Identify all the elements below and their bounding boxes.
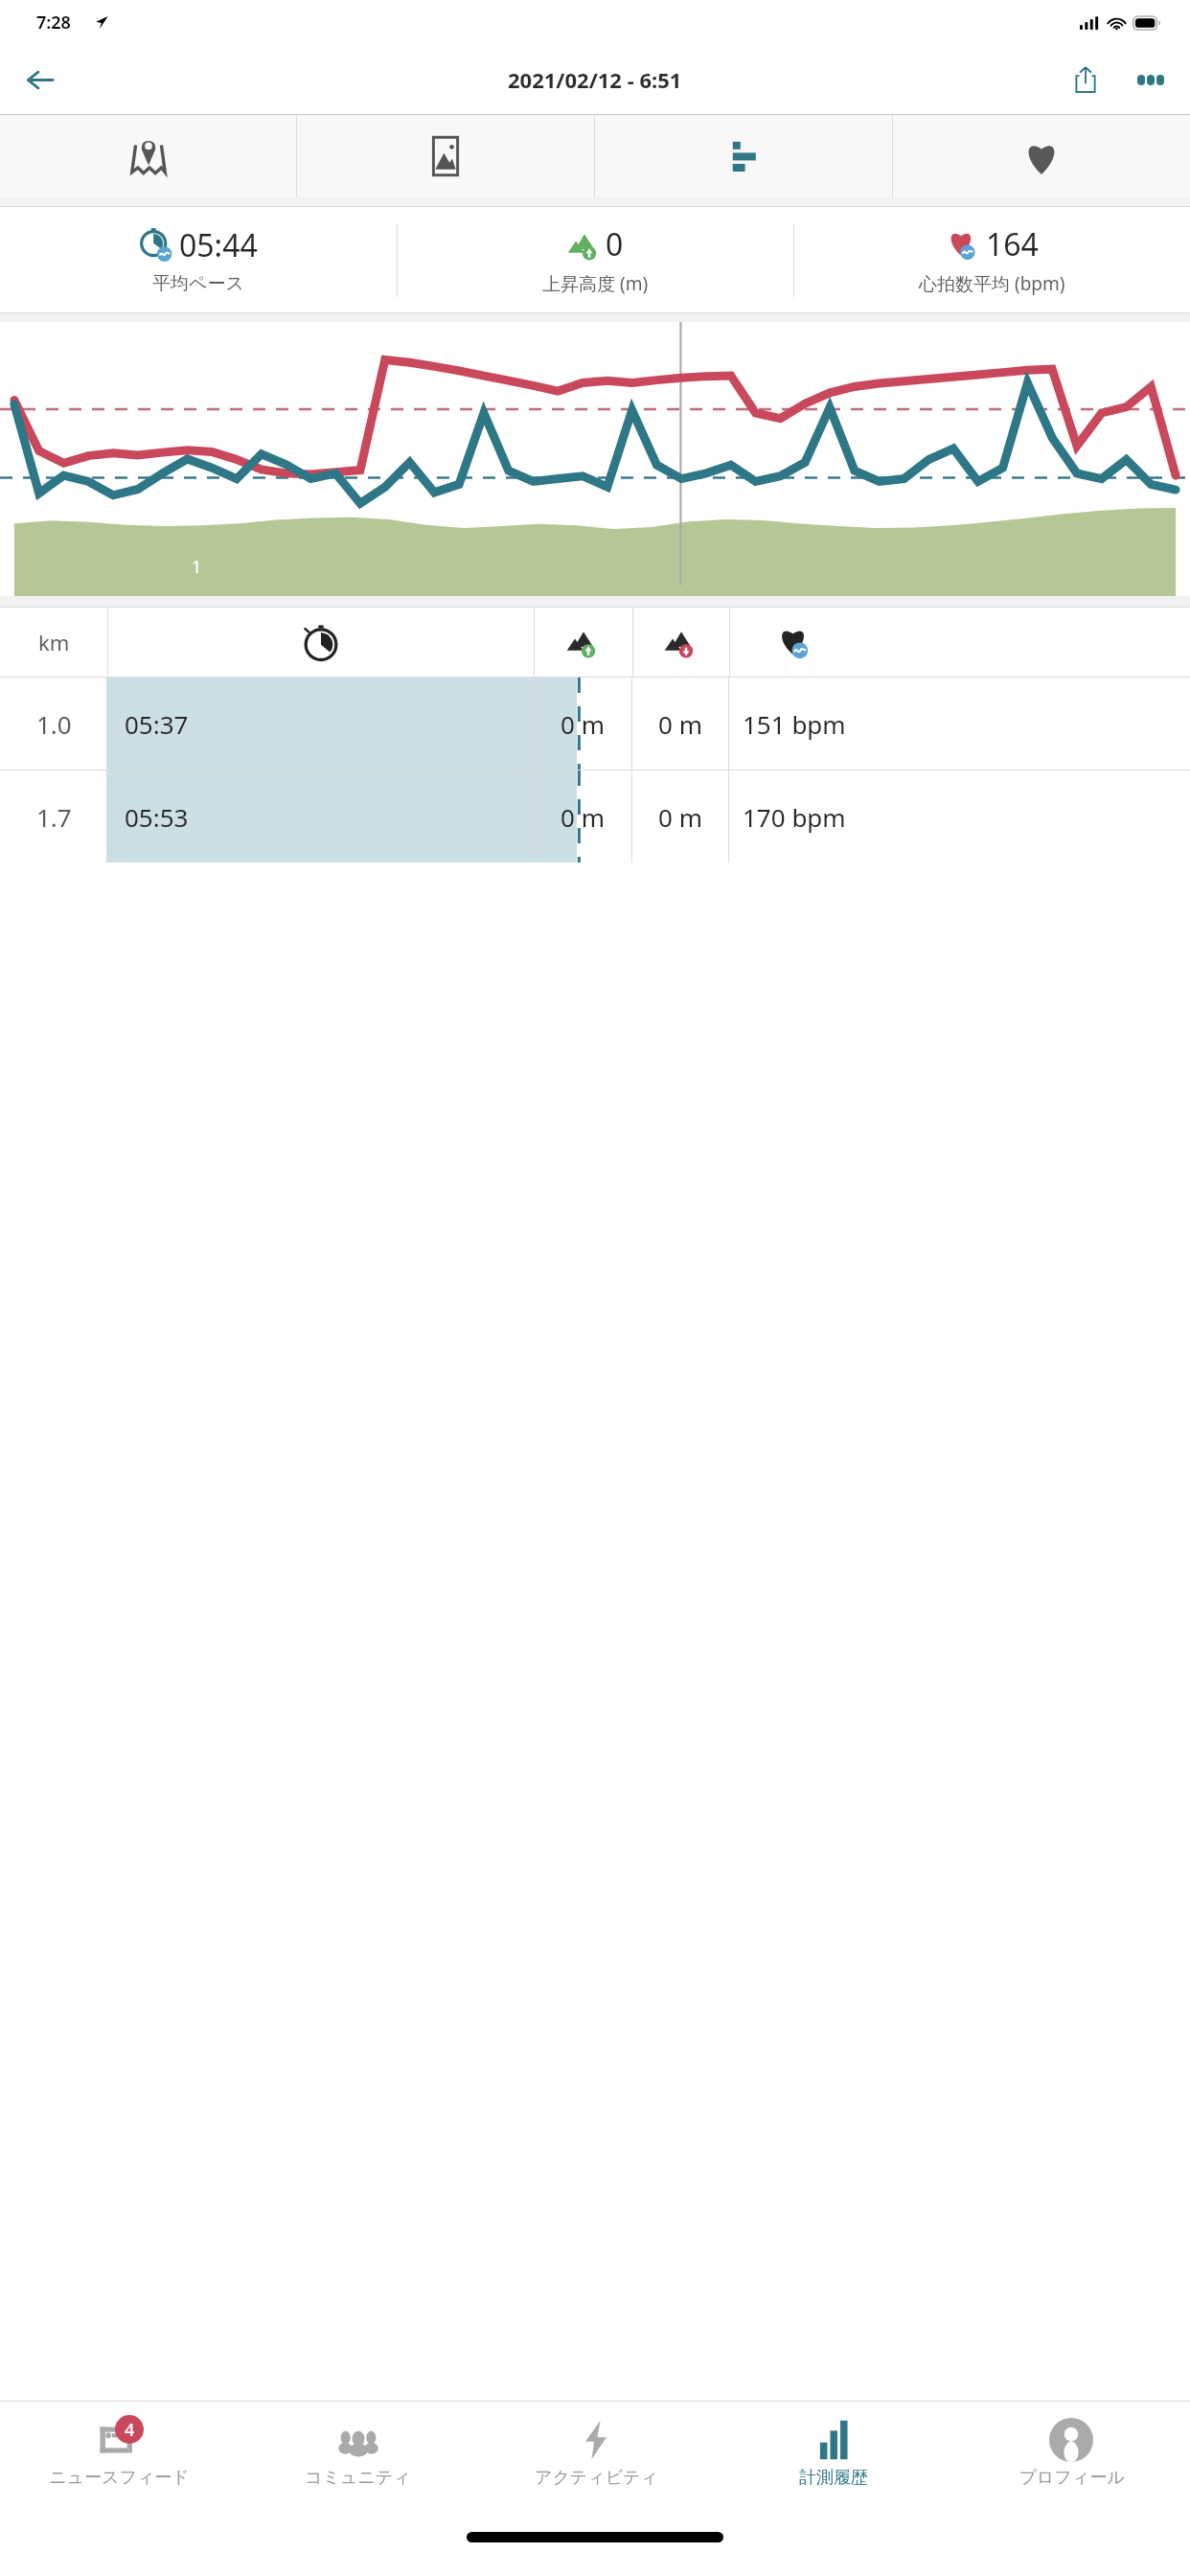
staticText: 0 m: [658, 800, 702, 834]
button[interactable]: More options: [1117, 46, 1184, 113]
button[interactable]: 05:44: [0, 207, 397, 312]
button[interactable]: Heart rate: [893, 115, 1190, 197]
button[interactable]: Chart: [595, 115, 892, 197]
staticText: 心拍数平均 (bpm): [919, 271, 1065, 296]
staticText: 0: [606, 223, 624, 265]
staticText: km: [38, 628, 70, 656]
staticText: 1.7: [36, 800, 72, 834]
staticText: 05:44: [179, 224, 258, 266]
staticText: 05:37: [125, 707, 189, 741]
staticText: 170 bpm: [743, 800, 846, 834]
staticText: 4: [125, 2418, 135, 2442]
button[interactable]: Back: [11, 52, 67, 107]
button[interactable]: 計測履歴: [715, 2402, 952, 2518]
staticText: 1: [192, 555, 202, 579]
staticText: 1.0: [36, 707, 72, 741]
staticText: 0 m: [658, 707, 702, 741]
button[interactable]: Map: [0, 115, 296, 197]
button[interactable]: Photos: [297, 115, 594, 197]
staticText: 05:53: [125, 800, 189, 834]
staticText: ニュースフィード: [49, 2467, 190, 2489]
staticText: 2021/02/12 - 6:51: [508, 65, 682, 94]
staticText: コミュニティ: [305, 2467, 411, 2489]
staticText: 7:28: [36, 11, 71, 34]
button[interactable]: 0: [398, 207, 793, 312]
staticText: 164: [986, 223, 1039, 265]
staticText: 0 m: [561, 707, 605, 741]
staticText: 0 m: [561, 800, 605, 834]
staticText: プロフィール: [1018, 2467, 1125, 2489]
button[interactable]: 164: [794, 207, 1190, 312]
staticText: アクティビティ: [535, 2467, 658, 2489]
button[interactable]: コミュニティ: [239, 2402, 477, 2518]
button[interactable]: プロフィール: [952, 2402, 1190, 2518]
staticText: 計測履歴: [799, 2467, 868, 2489]
button[interactable]: アクティビティ: [477, 2402, 715, 2518]
staticText: 151 bpm: [743, 707, 846, 741]
button[interactable]: Share: [1054, 48, 1117, 111]
button[interactable]: 4: [0, 2402, 239, 2518]
staticText: 平均ペース: [152, 272, 244, 295]
button[interactable]: 1.0: [0, 678, 1190, 770]
staticText: 上昇高度 (m): [542, 271, 649, 296]
button[interactable]: 1.7: [0, 770, 1190, 862]
